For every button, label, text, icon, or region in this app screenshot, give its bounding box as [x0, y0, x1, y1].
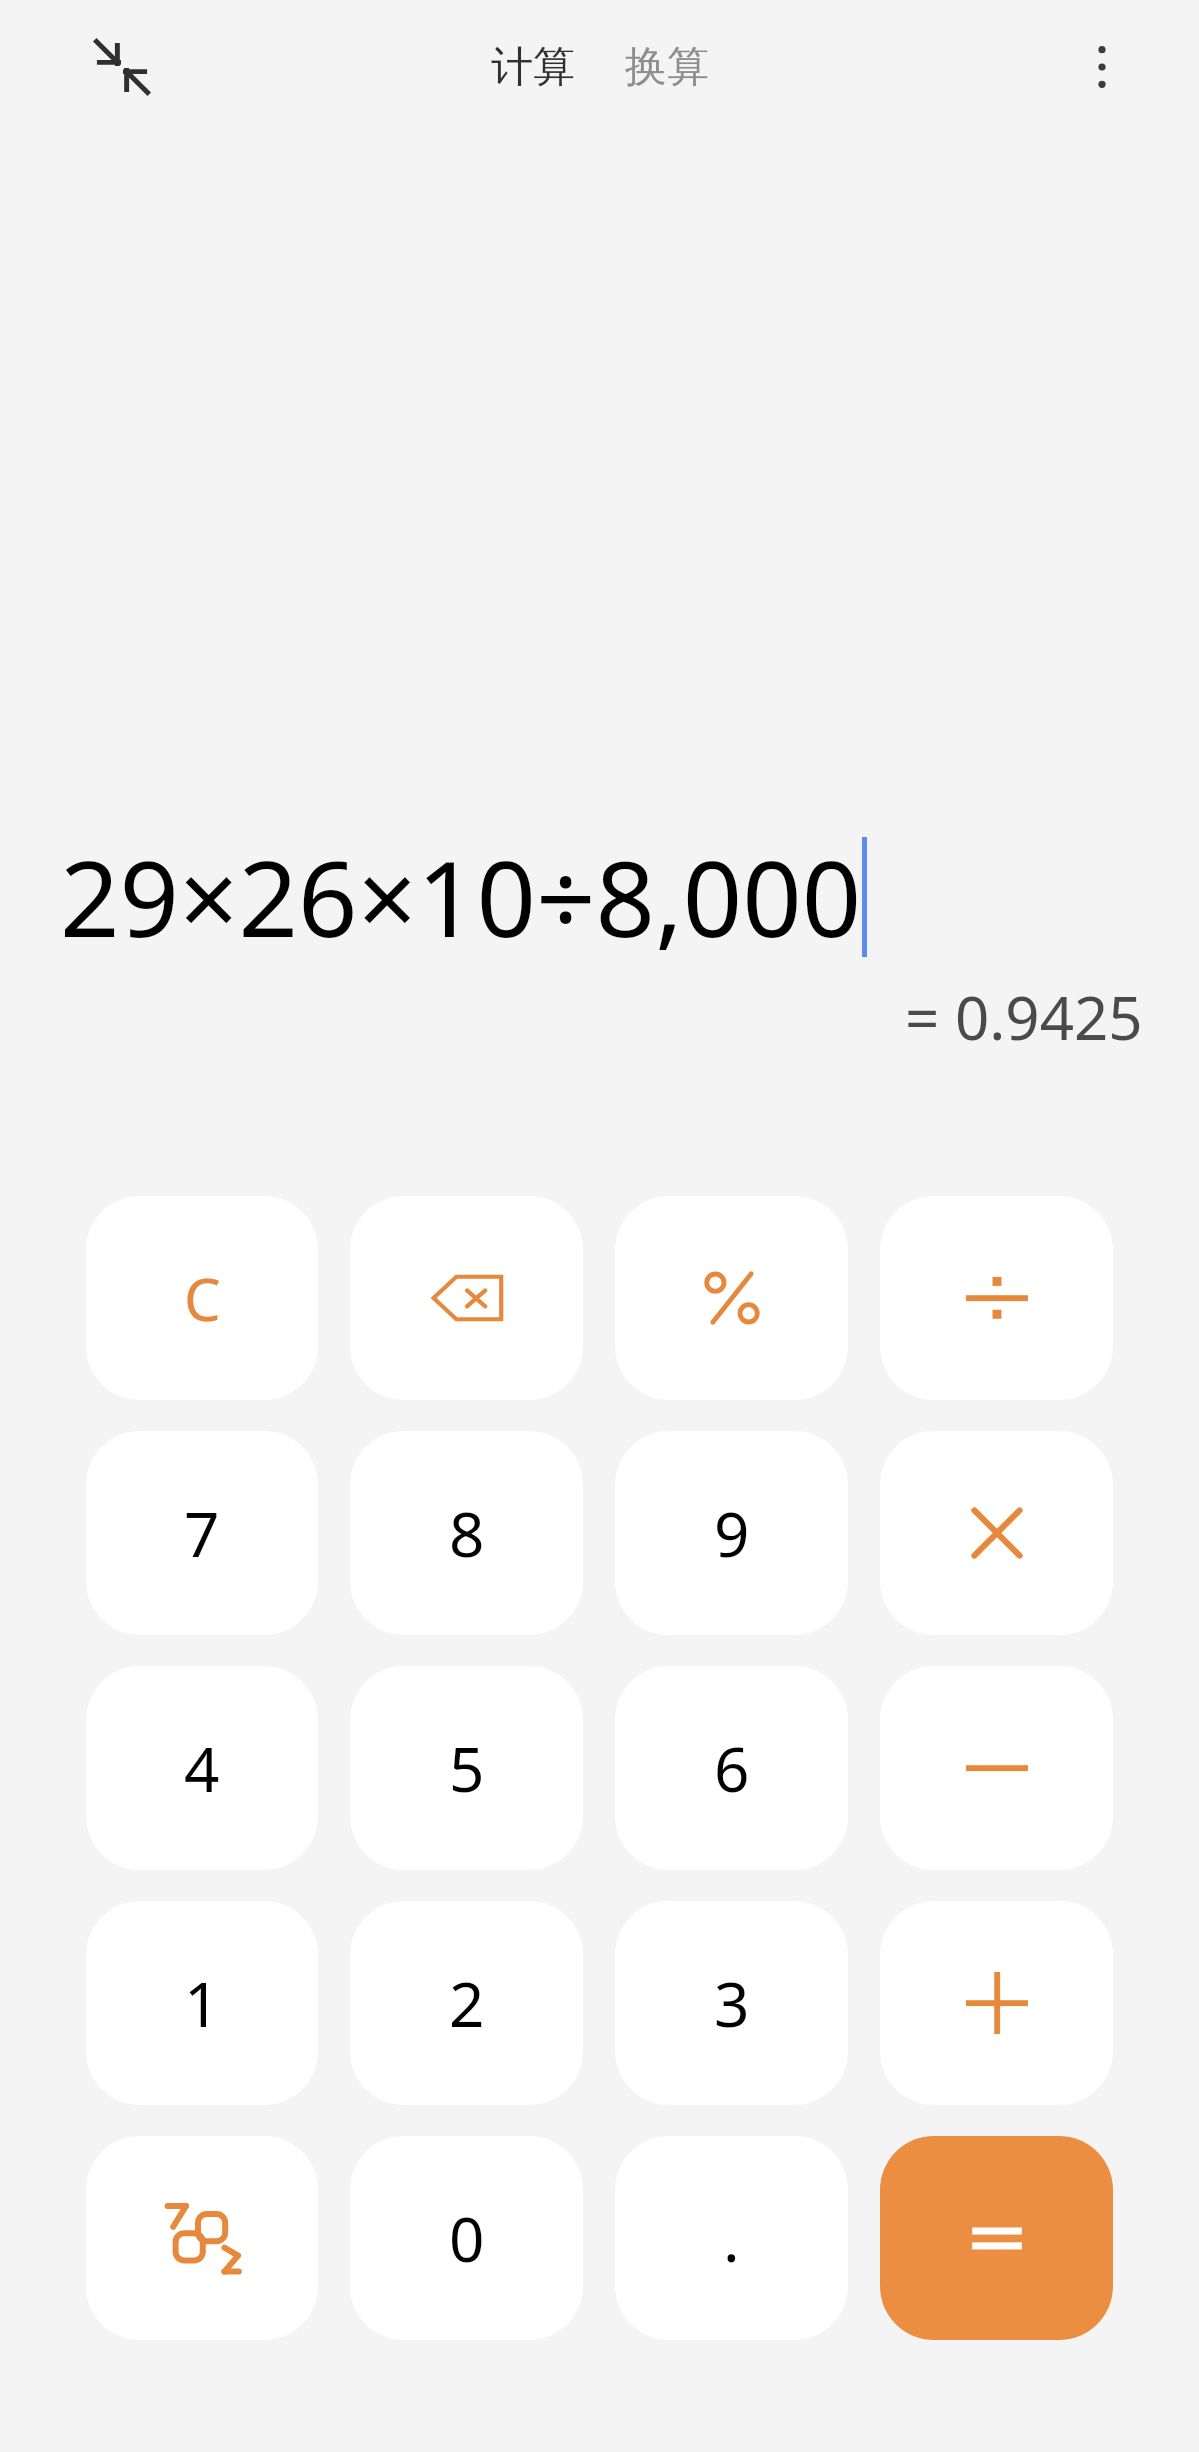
staticText: 2 — [449, 1961, 485, 2045]
button[interactable]: Equals — [880, 2136, 1113, 2340]
staticText: = 0.9425 — [905, 976, 1143, 1058]
button[interactable]: 换算 — [615, 31, 719, 104]
button[interactable]: 计算 — [481, 31, 585, 104]
staticText: 计算 — [491, 41, 575, 94]
button[interactable]: 6 — [615, 1666, 848, 1870]
button[interactable]: 8 — [350, 1431, 583, 1635]
button[interactable]: Multiply — [880, 1431, 1113, 1635]
button[interactable]: More options — [1057, 22, 1147, 112]
button[interactable]: Minus — [880, 1666, 1113, 1870]
button[interactable]: Clear — [86, 1196, 318, 1400]
staticText: C — [184, 1259, 221, 1338]
button[interactable]: Divide — [880, 1196, 1113, 1400]
staticText: 8 — [449, 1491, 485, 1575]
button[interactable]: Collapse — [74, 19, 170, 115]
button[interactable]: 0 — [350, 2136, 583, 2340]
button[interactable]: Scientific functions — [86, 2136, 318, 2340]
staticText: 3 — [714, 1961, 750, 2045]
staticText: 0 — [449, 2196, 485, 2280]
staticText: 29×26×10÷8,000 — [60, 826, 862, 968]
button[interactable]: 2 — [350, 1901, 583, 2105]
staticText: 换算 — [625, 41, 709, 94]
button[interactable]: . — [615, 2136, 848, 2340]
button[interactable]: 5 — [350, 1666, 583, 1870]
staticText: 1 — [184, 1961, 220, 2045]
staticText: 9 — [714, 1491, 750, 1575]
staticText: 6 — [714, 1726, 750, 1810]
button[interactable]: 1 — [86, 1901, 318, 2105]
button[interactable]: Percent — [615, 1196, 848, 1400]
button[interactable]: 7 — [86, 1431, 318, 1635]
button[interactable]: 4 — [86, 1666, 318, 1870]
button[interactable]: 9 — [615, 1431, 848, 1635]
button[interactable]: 3 — [615, 1901, 848, 2105]
staticText: 5 — [449, 1726, 485, 1810]
staticText: 7 — [184, 1491, 220, 1575]
staticText: 4 — [184, 1726, 220, 1810]
staticText: . — [723, 2196, 740, 2280]
button[interactable]: Plus — [880, 1901, 1113, 2105]
button[interactable]: Backspace — [350, 1196, 583, 1400]
